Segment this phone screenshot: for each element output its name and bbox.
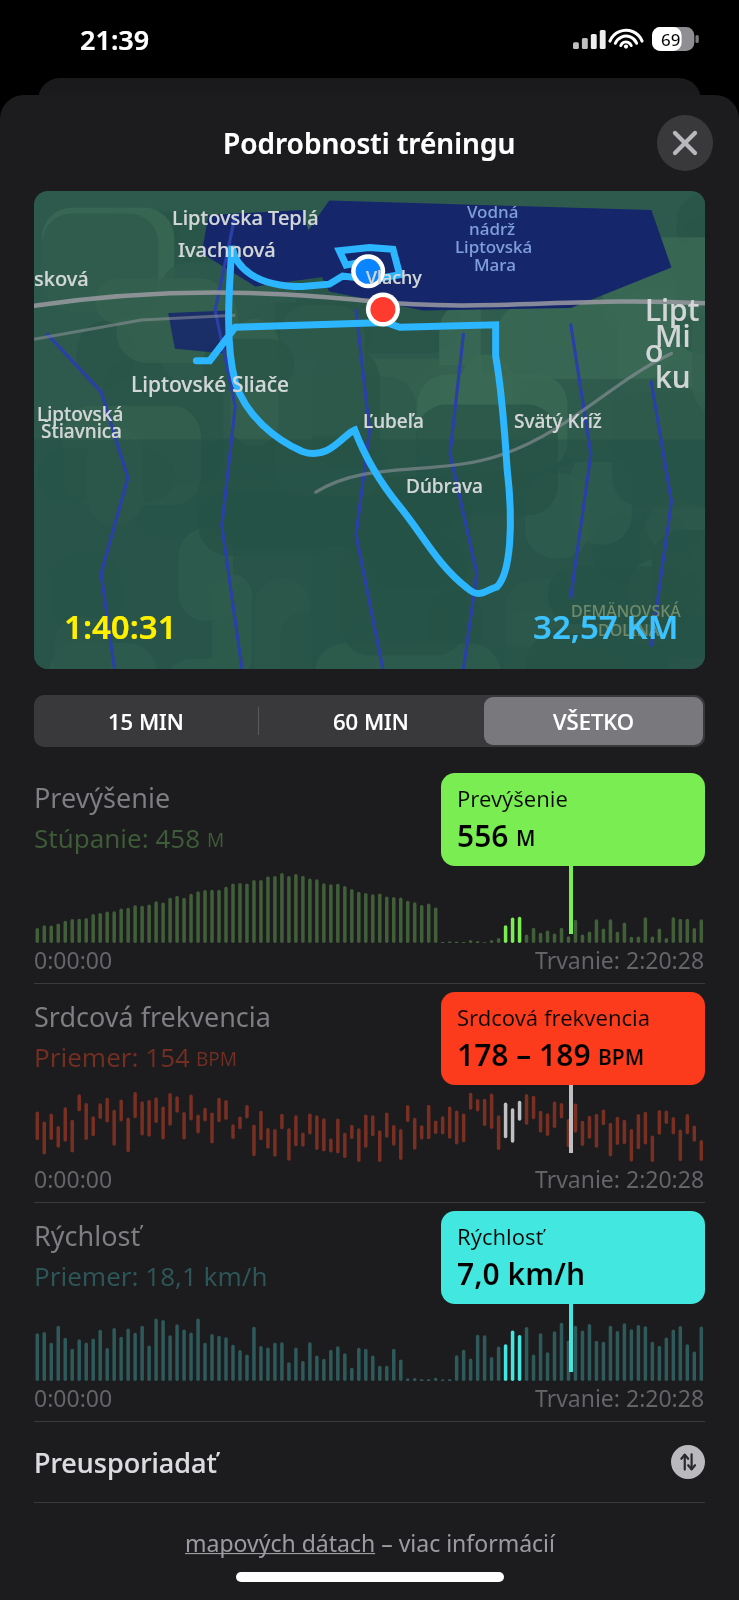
staticText: Trvanie: 2:20:28 — [535, 944, 705, 975]
staticText: 32,57 KM — [533, 604, 679, 649]
staticText: Liptovska Teplá — [172, 204, 319, 231]
staticText: Stúpanie: 458 — [34, 820, 201, 855]
staticText: Trvanie: 2:20:28 — [535, 1163, 705, 1194]
staticText: 556 — [457, 815, 509, 856]
staticText: Priemer: 18,1 km/h — [34, 1258, 268, 1293]
staticText: BPM — [196, 1046, 238, 1072]
staticText: Vlachy — [366, 265, 422, 290]
staticText: 21:39 — [80, 21, 150, 58]
staticText: 15 MIN — [108, 706, 184, 736]
staticText: M — [516, 824, 536, 853]
staticText: sková — [34, 265, 89, 292]
staticText: Preusporiadať — [34, 1444, 217, 1481]
staticText: 0:00:00 — [34, 944, 113, 975]
staticText: Ľubeľa — [363, 408, 424, 434]
staticText: Štiavnica — [41, 418, 122, 444]
staticText: nádrž — [469, 217, 516, 240]
staticText: mapových dátach – viac informácií — [185, 1527, 555, 1558]
staticText: Rýchlosť — [34, 1217, 141, 1254]
staticText: 1:40:31 — [64, 604, 177, 649]
staticText: Lipto — [645, 289, 705, 371]
staticText: 69 — [661, 28, 681, 51]
staticText: Podrobnosti tréningu — [223, 124, 516, 162]
staticText: M — [207, 827, 225, 853]
staticText: Mara — [474, 253, 516, 276]
staticText: VŠETKO — [553, 706, 634, 736]
staticText: Prevýšenie — [457, 783, 568, 813]
button[interactable]: Close — [657, 115, 713, 171]
staticText: 60 MIN — [333, 706, 409, 736]
staticText: DOLINA — [598, 619, 660, 641]
button[interactable]: Prevýšenie — [0, 765, 739, 983]
staticText: Vodná — [467, 200, 519, 223]
other: Reorder — [671, 1445, 705, 1479]
staticText: 7,0 km/h — [457, 1253, 586, 1294]
staticText: Rýchlosť — [457, 1221, 544, 1251]
staticText: Srdcová frekvencia — [34, 998, 271, 1035]
staticText: 0:00:00 — [34, 1382, 113, 1413]
button[interactable]: Preusporiadať — [34, 1422, 705, 1502]
button[interactable]: Rýchlosť — [0, 1203, 739, 1421]
button[interactable]: VŠETKO — [484, 697, 703, 745]
staticText: Trvanie: 2:20:28 — [535, 1382, 705, 1413]
staticText: 0:00:00 — [34, 1163, 113, 1194]
staticText: Svätý Kríž — [514, 408, 602, 434]
staticText: Ivachnová — [178, 236, 276, 263]
button[interactable]: 60 MIN — [261, 697, 480, 745]
staticText: Prevýšenie — [34, 779, 171, 816]
staticText: Liptovská — [37, 401, 124, 427]
staticText: Srdcová frekvencia — [457, 1002, 651, 1032]
staticText: Dúbrava — [406, 473, 483, 499]
staticText: Liptovská — [455, 235, 533, 258]
button[interactable]: Srdcová frekvencia — [0, 984, 739, 1202]
staticText: 178 – 189 — [457, 1034, 591, 1075]
staticText: DEMÄNOVSKÁ — [571, 600, 681, 622]
staticText: Miku — [655, 315, 705, 397]
button[interactable]: 15 MIN — [36, 697, 256, 745]
button[interactable]: Liptovska Teplá — [34, 191, 705, 669]
staticText: Liptovské Sliače — [131, 370, 290, 399]
staticText: BPM — [598, 1043, 645, 1072]
staticText: Priemer: 154 — [34, 1039, 190, 1074]
